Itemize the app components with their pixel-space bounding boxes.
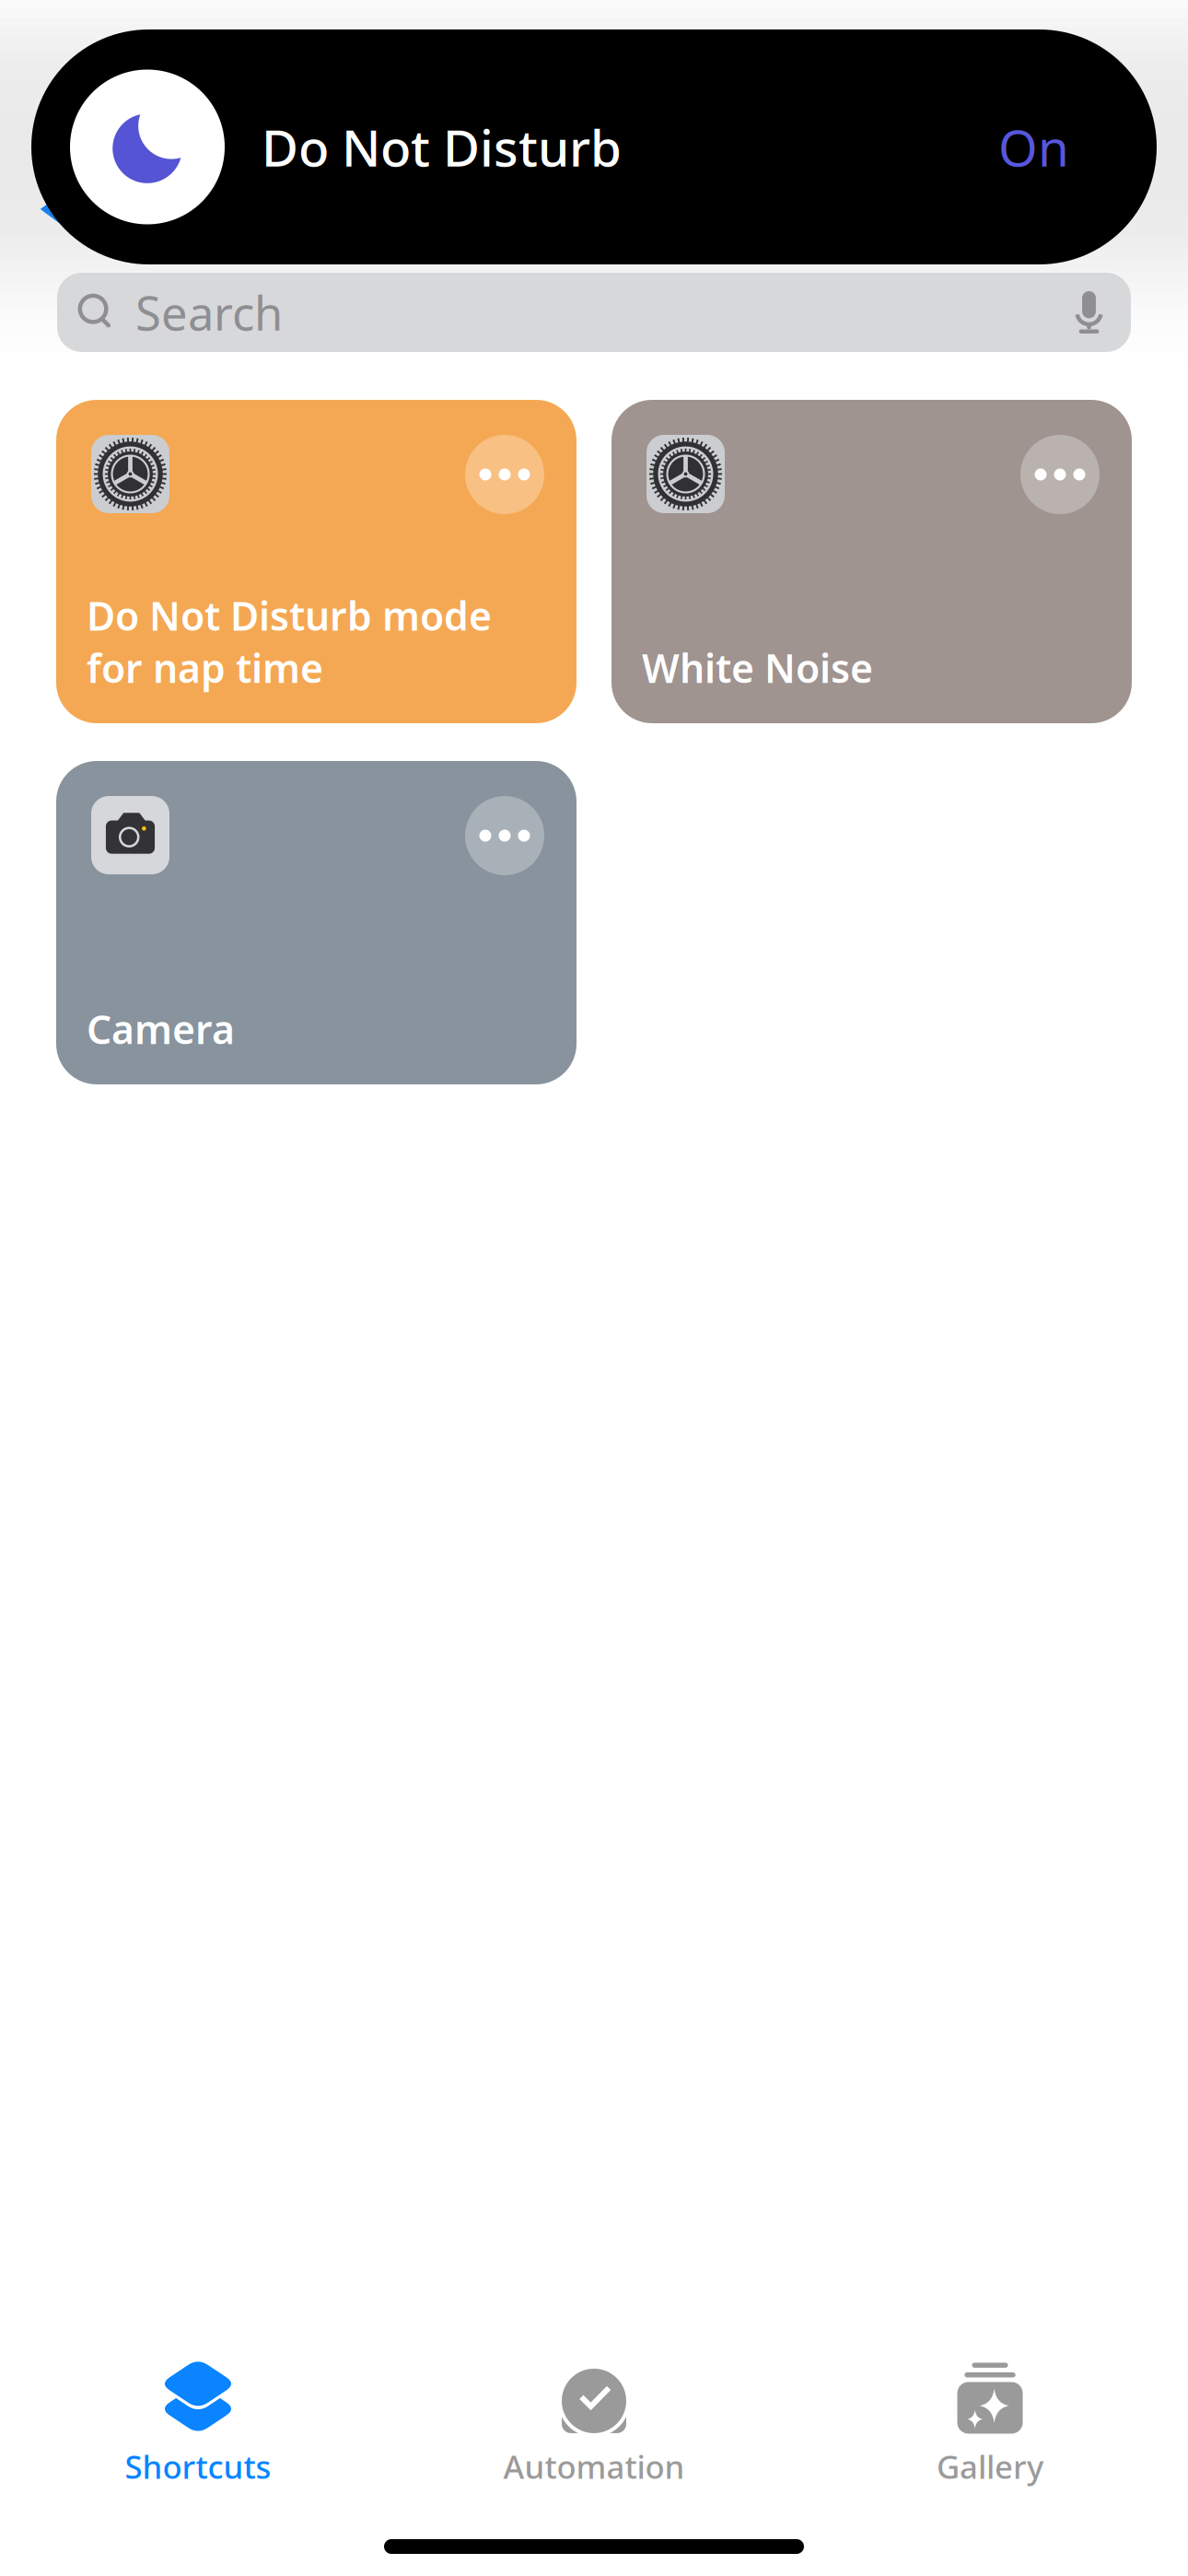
button[interactable]: Automation [396,2361,792,2488]
button[interactable]: Shortcuts [0,2361,396,2488]
staticText: On [998,114,1069,180]
button[interactable]: Camera [56,761,577,1084]
button[interactable]: White Noise [611,400,1132,723]
staticText: Search [135,281,283,343]
staticText: Shortcuts [125,2445,271,2488]
button[interactable]: Gallery [792,2361,1188,2488]
staticText: Automation [503,2445,685,2488]
button[interactable]: Do Not Disturb [31,29,1157,264]
staticText: Do Not Disturb mode for nap time [87,589,492,694]
staticText: White Noise [642,642,873,694]
staticText: Do Not Disturb [262,114,622,180]
staticText: Gallery [937,2445,1043,2488]
button[interactable]: Search [57,273,1131,352]
staticText: Camera [87,1003,235,1055]
button[interactable]: Do Not Disturb mode for nap time [56,400,577,723]
